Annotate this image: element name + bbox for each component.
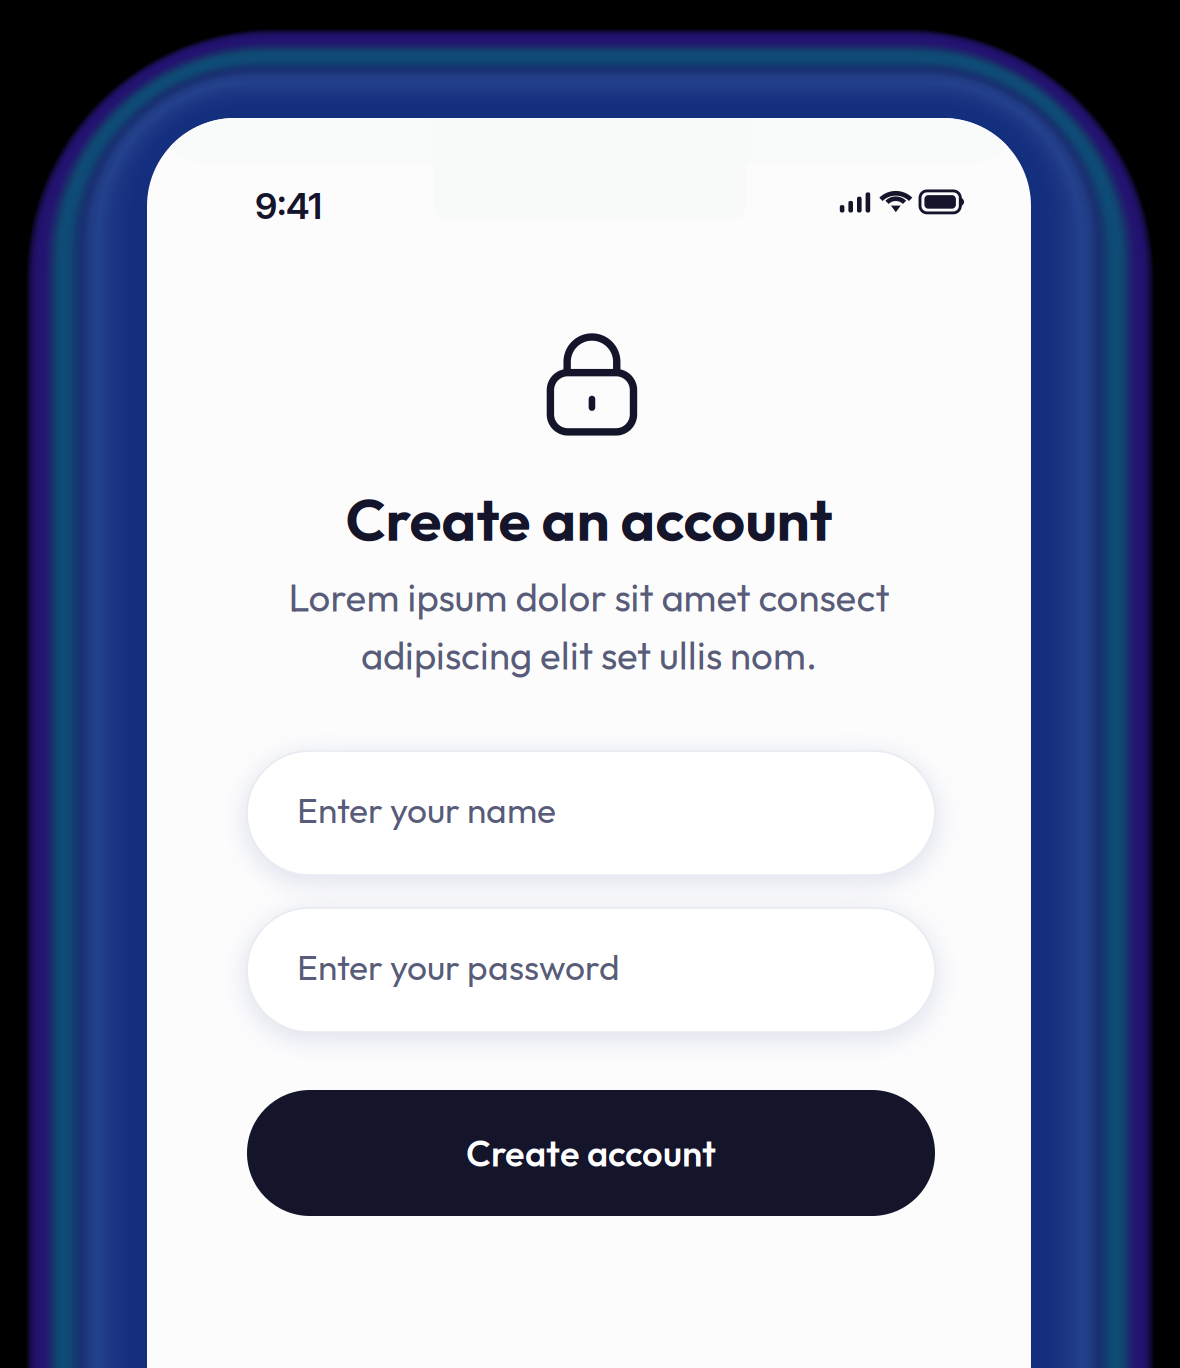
staticText: Enter your password (297, 945, 620, 989)
staticText: 9:41 (255, 184, 322, 228)
staticText: adipiscing elit set ullis nom. (361, 631, 817, 679)
button[interactable]: Enter your name (247, 751, 935, 875)
staticText: Enter your name (297, 788, 556, 832)
button[interactable]: Enter your password (247, 908, 935, 1032)
staticText: Lorem ipsum dolor sit amet consect (288, 573, 889, 621)
button[interactable]: Create account (247, 1090, 935, 1216)
staticText: Create an account (345, 482, 832, 556)
staticText: Create account (466, 1130, 716, 1176)
